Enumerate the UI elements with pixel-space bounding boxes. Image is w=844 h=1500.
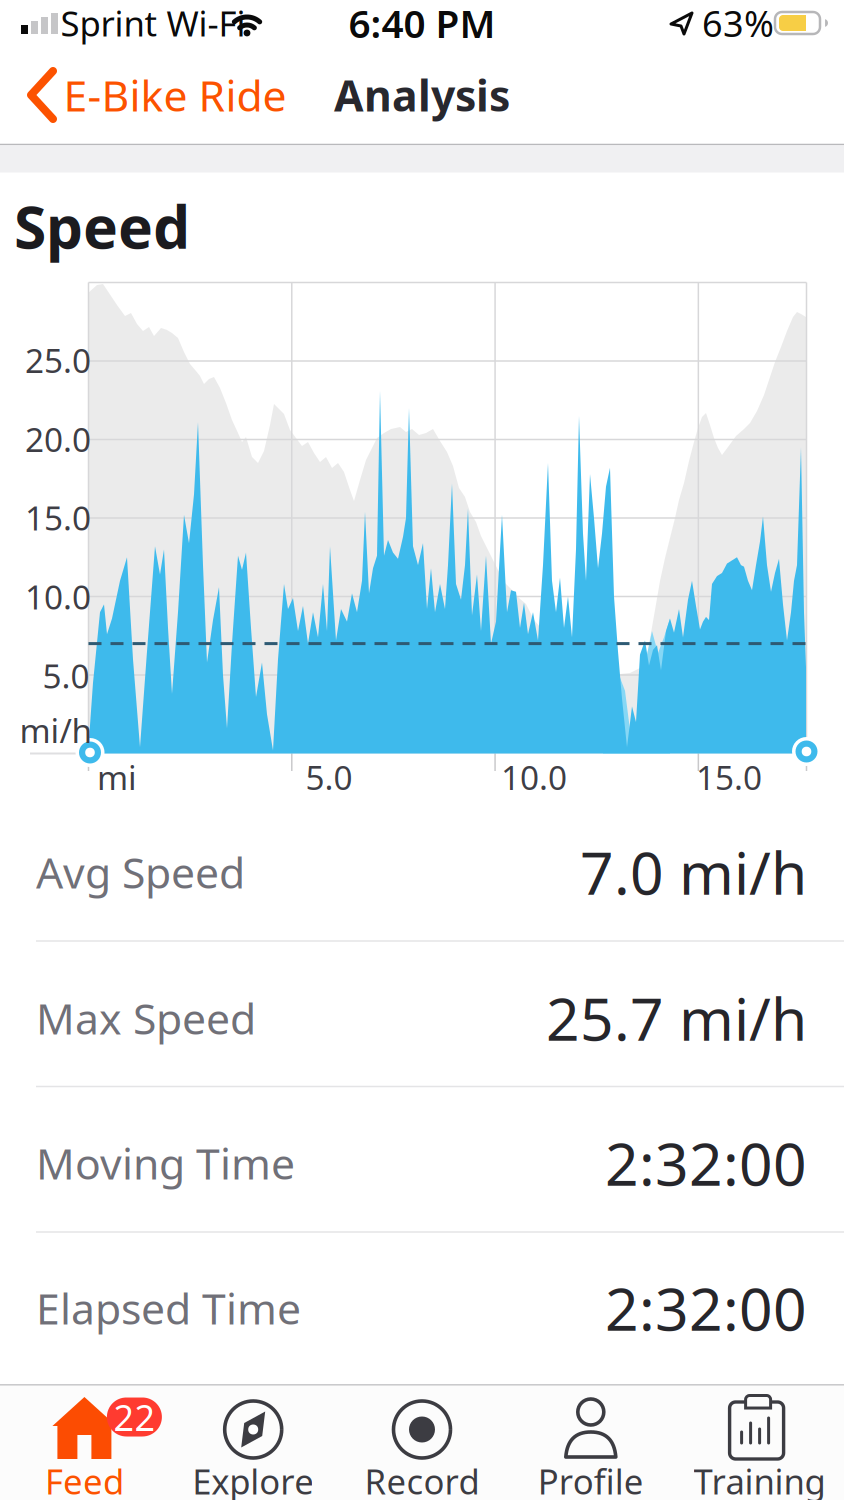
staticText: 25.0 <box>25 338 91 382</box>
staticText: 22 <box>113 1393 155 1441</box>
staticText: 5.0 <box>305 755 352 799</box>
staticText: Elapsed Time <box>36 1280 301 1336</box>
staticText: 10.0 <box>501 755 567 799</box>
button[interactable]: Explore <box>169 1385 337 1499</box>
staticText: 20.0 <box>25 417 91 461</box>
staticText: E-Bike Ride <box>63 67 286 123</box>
staticText: Speed <box>14 187 190 265</box>
staticText: Feed <box>45 1458 124 1500</box>
staticText: Training <box>694 1458 826 1500</box>
staticText: Explore <box>192 1458 314 1500</box>
button[interactable]: Record <box>338 1385 506 1499</box>
staticText: Sprint Wi-Fi <box>60 0 245 46</box>
staticText: 5.0 <box>42 653 89 698</box>
button[interactable]: Profile <box>507 1385 675 1499</box>
staticText: mi <box>97 755 137 799</box>
staticText: 10.0 <box>25 574 91 619</box>
staticText: 2:32:00 <box>605 1124 807 1202</box>
staticText: 25.7 mi/h <box>546 979 807 1057</box>
staticText: mi/h <box>19 708 92 752</box>
staticText: 6:40 PM <box>348 0 495 49</box>
button[interactable]: Back <box>20 62 270 128</box>
staticText: 2:32:00 <box>605 1269 807 1347</box>
staticText: 7.0 mi/h <box>580 833 807 911</box>
staticText: 63% <box>702 0 774 47</box>
staticText: Analysis <box>334 67 510 123</box>
button[interactable]: Feed <box>0 1385 168 1499</box>
staticText: Moving Time <box>36 1135 295 1191</box>
staticText: Record <box>364 1458 479 1500</box>
staticText: Profile <box>538 1458 644 1500</box>
button[interactable]: Training <box>676 1385 844 1499</box>
staticText: Avg Speed <box>36 844 245 900</box>
staticText: Max Speed <box>36 990 256 1046</box>
staticText: 15.0 <box>696 755 762 799</box>
staticText: 15.0 <box>25 495 91 540</box>
